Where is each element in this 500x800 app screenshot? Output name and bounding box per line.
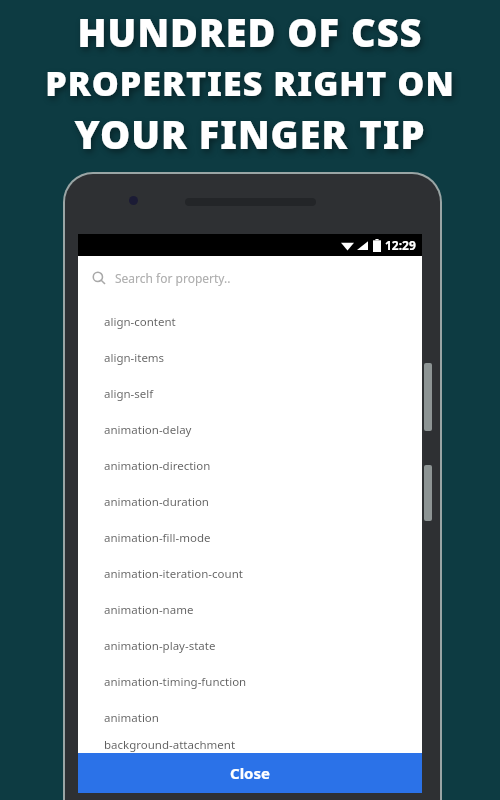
staticText: animation-duration <box>104 494 209 510</box>
button[interactable]: animation-duration <box>78 484 422 520</box>
button[interactable]: animation-iteration-count <box>78 556 422 592</box>
button[interactable]: animation-play-state <box>78 628 422 664</box>
staticText: 12:29 <box>385 237 416 253</box>
staticText: align-items <box>104 350 165 366</box>
staticText: animation-play-state <box>104 638 216 654</box>
button[interactable]: animation-timing-function <box>78 664 422 700</box>
button[interactable]: animation-fill-mode <box>78 520 422 556</box>
button[interactable]: animation-direction <box>78 448 422 484</box>
button[interactable]: Close <box>78 753 422 793</box>
button[interactable]: Search for property.. <box>78 256 422 300</box>
staticText: YOUR FINGER TIP <box>0 108 500 160</box>
staticText: animation-iteration-count <box>104 566 243 582</box>
button[interactable]: background-attachment <box>78 736 422 753</box>
button[interactable]: animation-name <box>78 592 422 628</box>
button[interactable]: animation-delay <box>78 412 422 448</box>
staticText: PROPERTIES RIGHT ON <box>0 60 500 106</box>
button[interactable]: align-self <box>78 376 422 412</box>
staticText: align-content <box>104 314 176 330</box>
button[interactable]: align-items <box>78 340 422 376</box>
button[interactable]: align-content <box>78 304 422 340</box>
staticText: animation-delay <box>104 422 192 438</box>
staticText: animation-name <box>104 602 194 618</box>
staticText: align-self <box>104 386 154 402</box>
staticText: animation <box>104 710 159 726</box>
staticText: animation-timing-function <box>104 674 247 690</box>
staticText: HUNDRED OF CSS <box>0 6 500 58</box>
button[interactable]: animation <box>78 700 422 736</box>
staticText: animation-direction <box>104 458 211 474</box>
staticText: Search for property.. <box>115 270 231 286</box>
staticText: animation-fill-mode <box>104 530 211 546</box>
staticText: Close <box>230 763 270 783</box>
staticText: background-attachment <box>104 737 236 753</box>
